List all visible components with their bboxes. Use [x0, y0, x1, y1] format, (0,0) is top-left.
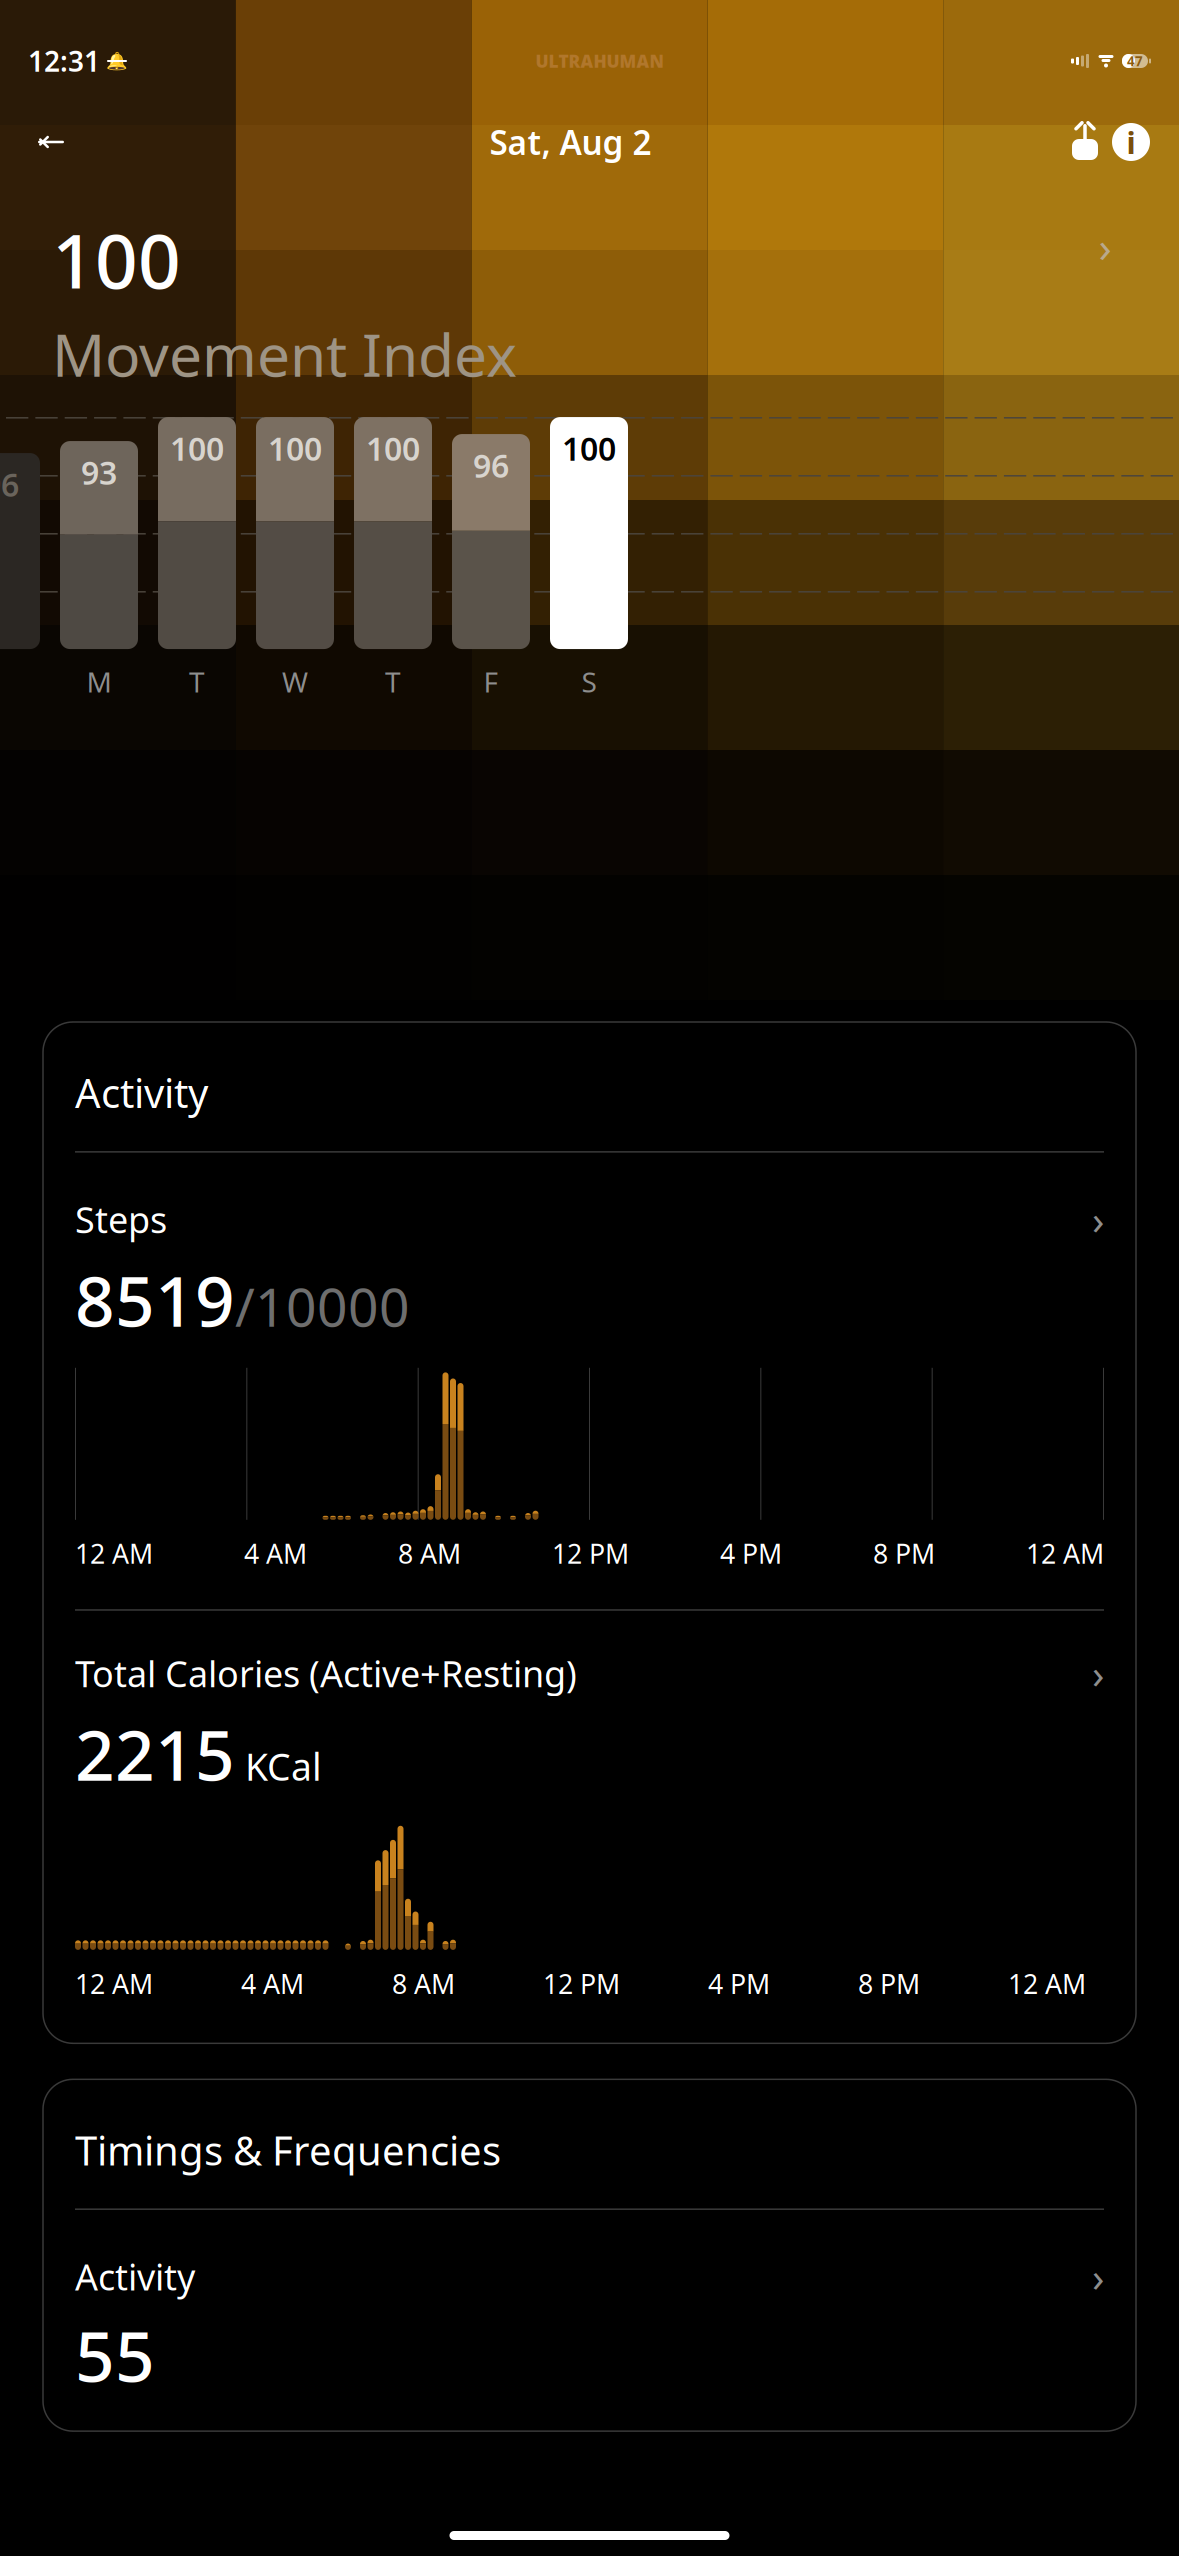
staticText: 100 — [366, 427, 420, 470]
staticText: 12 AM — [1008, 1966, 1086, 2001]
staticText: 96 — [473, 444, 509, 487]
button[interactable]: Activity — [43, 2210, 1136, 2401]
staticText: 2215 — [75, 1708, 235, 1800]
staticText: 12 AM — [75, 1966, 153, 2001]
staticText: 47 — [1127, 52, 1143, 70]
staticText: ULTRAHUMAN — [535, 49, 663, 72]
staticText: › — [1098, 218, 1111, 274]
staticText: 12 AM — [75, 1536, 153, 1571]
staticText: KCal — [235, 1741, 322, 1791]
staticText: Steps — [75, 1195, 167, 1243]
staticText: 8 PM — [858, 1966, 920, 2001]
staticText: Sat, Aug 2 — [489, 120, 651, 164]
button[interactable]: Back — [24, 120, 78, 164]
staticText: 100 — [562, 427, 616, 470]
staticText: 4 PM — [720, 1536, 782, 1571]
button[interactable]: Information — [1107, 120, 1155, 164]
staticText: T — [385, 663, 401, 700]
staticText: 12 PM — [552, 1536, 629, 1571]
staticText: 8519 — [75, 1254, 235, 1346]
staticText: 96 — [0, 463, 19, 506]
staticText: 8 AM — [392, 1966, 455, 2001]
staticText: Activity — [75, 1066, 208, 1119]
staticText: Timings & Frequencies — [75, 2123, 501, 2176]
staticText: 4 AM — [244, 1536, 307, 1571]
button[interactable]: Steps — [43, 1153, 1136, 1571]
staticText: › — [1092, 2250, 1104, 2303]
staticText: S — [581, 663, 596, 700]
staticText: 100 — [268, 427, 322, 470]
staticText: › — [1092, 1193, 1104, 1246]
staticText: T — [189, 663, 205, 700]
staticText: W — [282, 663, 308, 700]
staticText: M — [86, 663, 111, 700]
staticText: Activity — [75, 2253, 195, 2300]
staticText: 🔔 — [106, 51, 128, 71]
staticText: Total Calories (Active+Resting) — [75, 1649, 577, 1697]
staticText: 8 AM — [398, 1536, 461, 1571]
staticText: 100 — [52, 210, 181, 309]
staticText: 4 AM — [241, 1966, 304, 2001]
staticText: 12 PM — [543, 1966, 620, 2001]
staticText: 100 — [170, 427, 224, 470]
button[interactable]: Total Calories (Active+Resting) — [43, 1611, 1136, 2001]
staticText: 55 — [75, 2309, 155, 2401]
staticText: Movement Index — [52, 315, 517, 393]
staticText: 8 PM — [873, 1536, 935, 1571]
staticText: /10000 — [235, 1271, 410, 1341]
staticText: F — [483, 663, 498, 700]
button[interactable]: Share — [1063, 120, 1107, 164]
staticText: 12:31 — [28, 42, 100, 80]
staticText: i — [1126, 122, 1135, 162]
button[interactable]: Movement Index details — [1083, 224, 1127, 268]
staticText: 12 AM — [1026, 1536, 1104, 1571]
staticText: 4 PM — [708, 1966, 770, 2001]
staticText: 93 — [81, 451, 117, 494]
staticText: › — [1092, 1647, 1104, 1700]
